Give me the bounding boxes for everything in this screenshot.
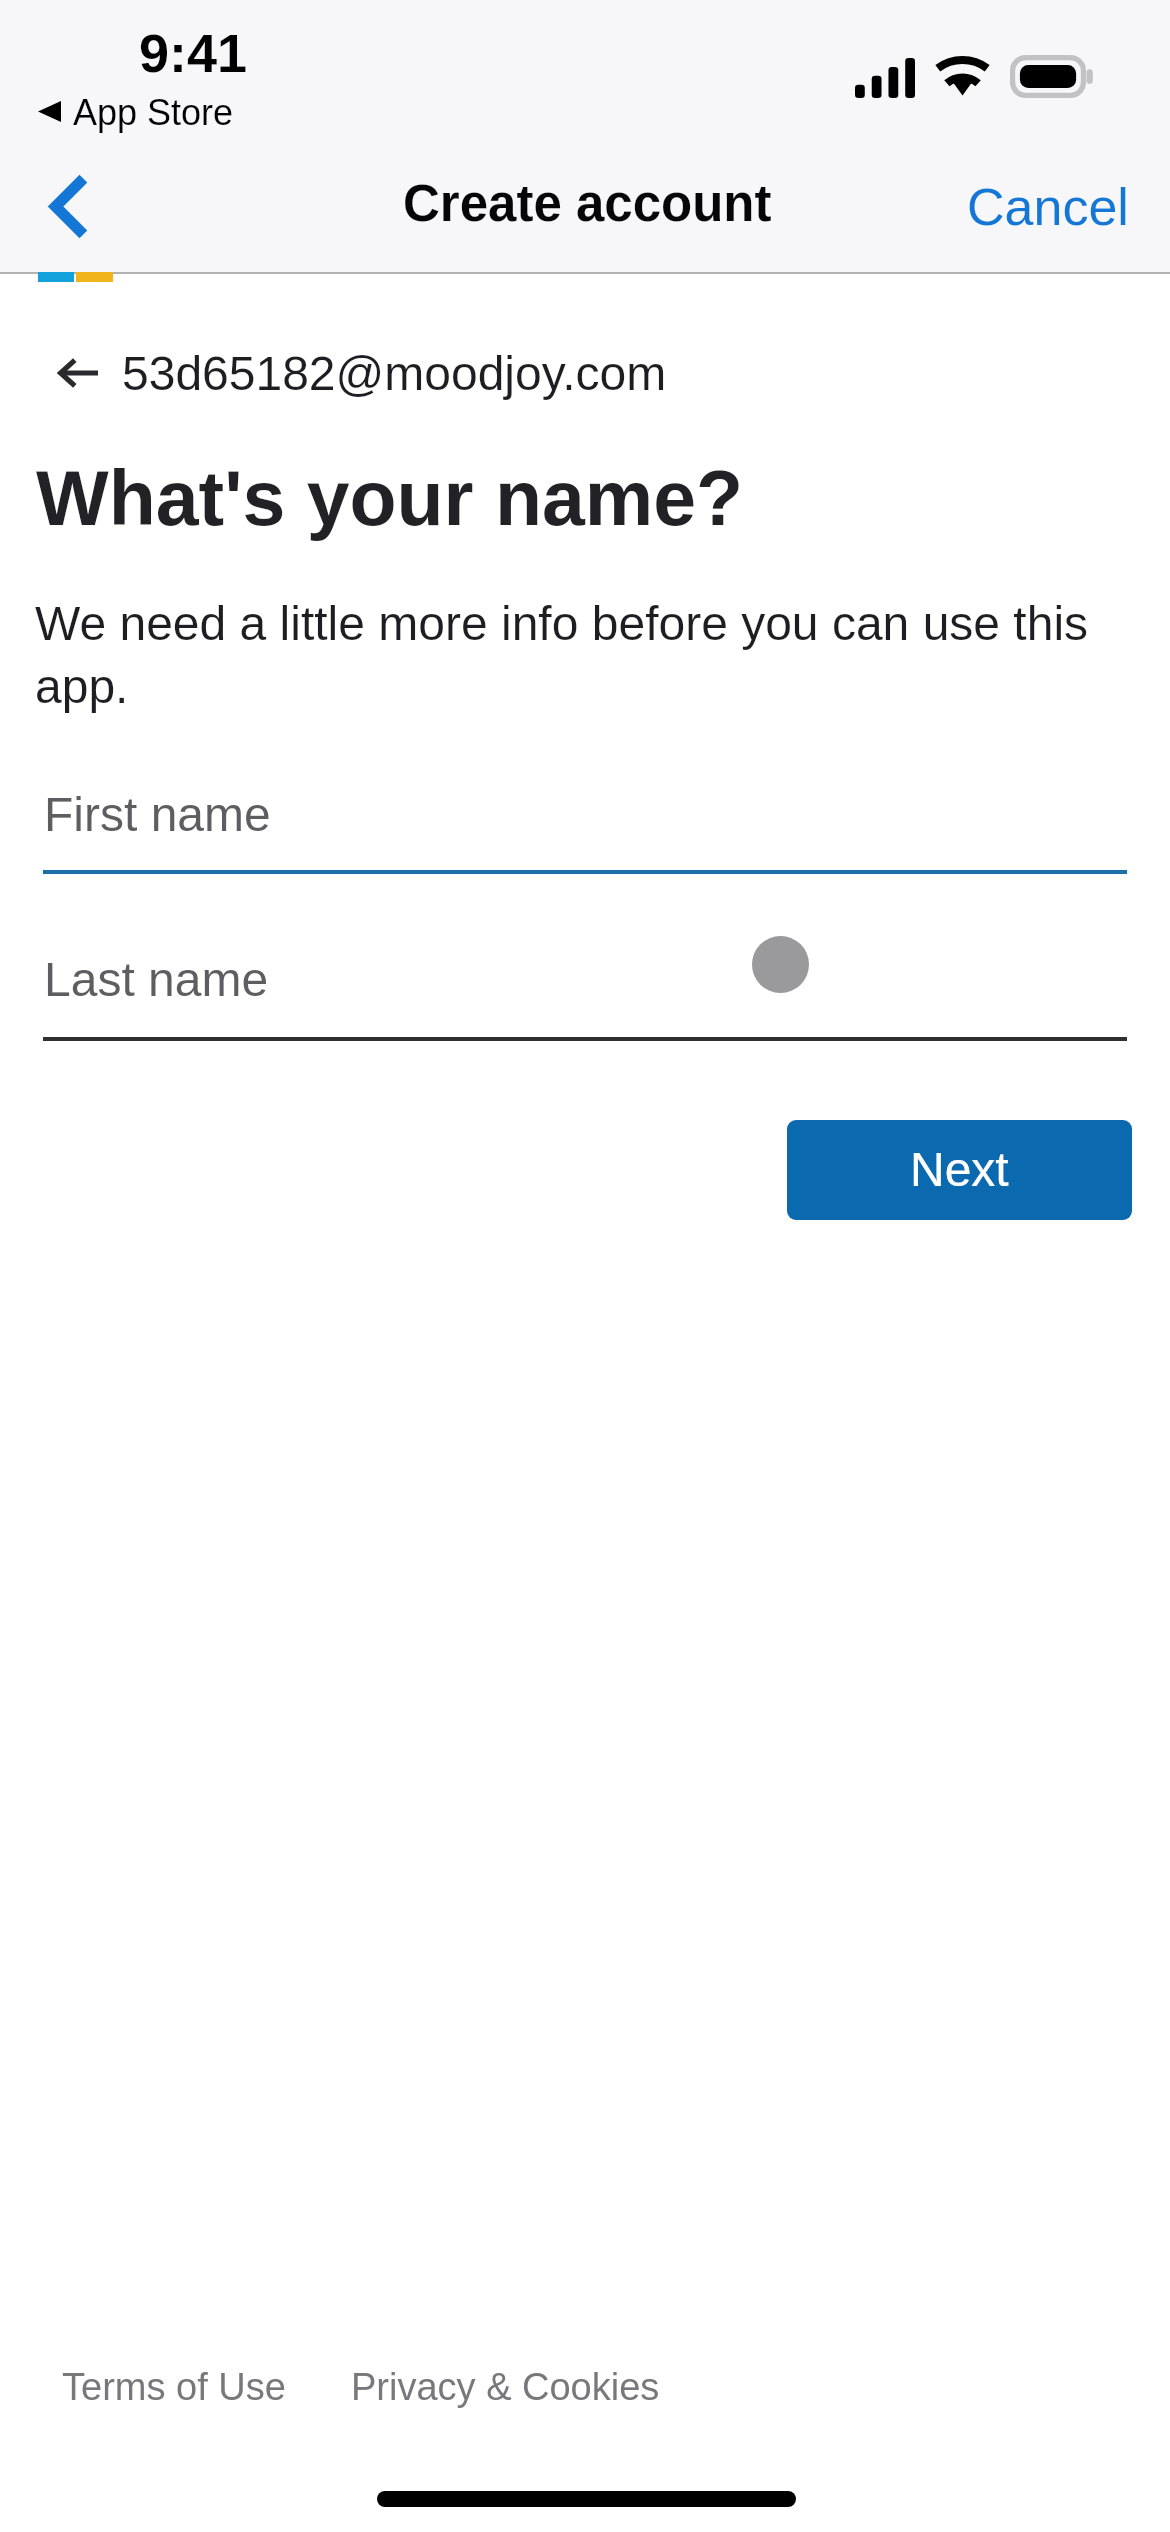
button[interactable]: First name [43,768,1127,874]
staticText: Cancel [967,178,1129,236]
button[interactable]: 53d65182@moodjoy.com [36,336,696,412]
other: Battery full [1010,55,1094,98]
button[interactable]: Next [787,1120,1132,1220]
staticText: Privacy & Cookies [351,2366,660,2408]
staticText: 53d65182@moodjoy.com [122,347,667,401]
button[interactable]: Privacy & Cookies [331,2356,680,2418]
staticText: 9:41 [139,23,248,83]
other: Wi-Fi [937,56,988,95]
staticText: Create account [403,175,772,232]
button[interactable]: Back [0,150,140,272]
button[interactable]: Back to App Store [28,86,258,134]
button[interactable]: Cancel [944,155,1144,272]
staticText: Last name [44,953,269,1007]
staticText: App Store [73,92,234,132]
staticText: Terms of Use [62,2366,286,2408]
staticText: Next [910,1143,1009,1197]
button[interactable]: Last name [43,933,1127,1041]
staticText: What's your name? [36,455,744,541]
other: Cellular signal [855,58,915,98]
staticText: We need a little more info before you ca… [35,597,1110,714]
button[interactable]: Terms of Use [42,2356,306,2418]
staticText: First name [44,788,271,842]
